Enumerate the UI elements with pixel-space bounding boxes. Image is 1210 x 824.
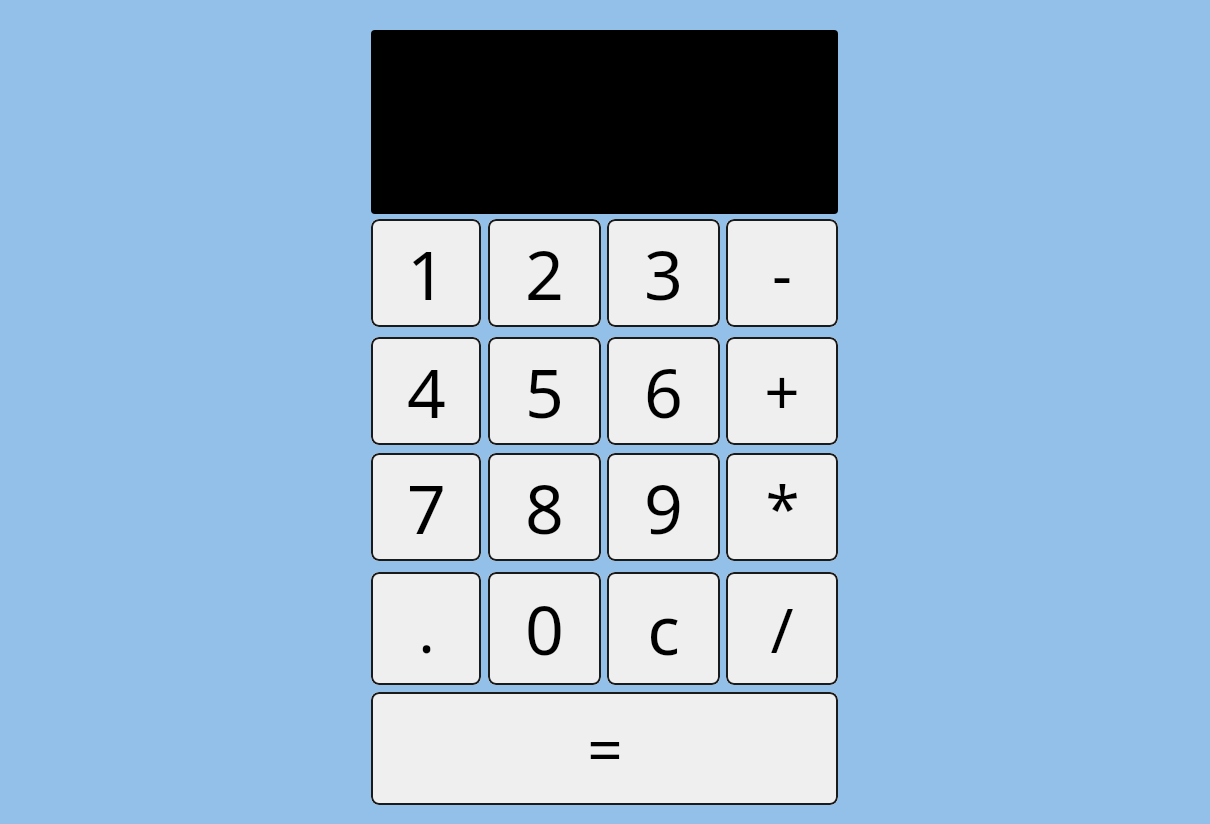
staticText: 1 [407,227,446,320]
staticText: 3 [644,227,683,320]
button[interactable]: 7 [371,453,481,561]
button[interactable]: 3 [607,219,720,327]
button[interactable]: 1 [371,219,481,327]
staticText: 0 [525,582,564,675]
staticText: / [770,587,794,671]
staticText: c [647,582,680,675]
button[interactable]: 0 [488,572,601,685]
button[interactable]: 9 [607,453,720,561]
button[interactable]: Plus [726,337,838,445]
button[interactable]: 6 [607,337,720,445]
button[interactable]: Equals [371,692,838,805]
staticText: 2 [525,227,564,320]
button[interactable]: 8 [488,453,601,561]
staticText: 6 [644,345,683,438]
staticText: = [587,707,623,791]
button[interactable]: Clear [607,572,720,685]
staticText: - [772,231,792,315]
staticText: 4 [407,345,446,438]
staticText: 8 [525,461,564,554]
staticText: + [764,349,800,433]
staticText: 5 [525,345,564,438]
staticText: . [418,587,435,671]
staticText: * [765,465,800,549]
button[interactable]: 2 [488,219,601,327]
button[interactable]: Decimal point [371,572,481,685]
button[interactable]: 5 [488,337,601,445]
button[interactable]: Multiply [726,453,838,561]
button[interactable]: Minus [726,219,838,327]
button[interactable]: Divide [726,572,838,685]
button[interactable]: 4 [371,337,481,445]
staticText: 7 [407,461,446,554]
staticText: 9 [644,461,683,554]
